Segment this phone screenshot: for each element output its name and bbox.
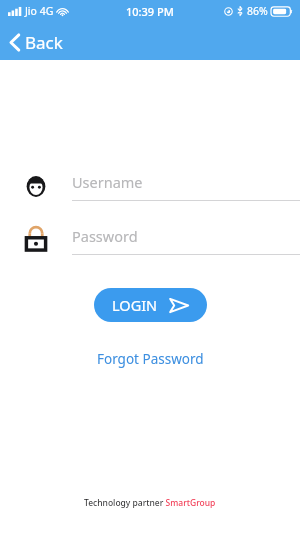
staticText: Forgot Password bbox=[97, 350, 204, 368]
staticText: Jio 4G bbox=[25, 4, 54, 18]
staticText: Username bbox=[72, 172, 143, 192]
staticText: Password bbox=[72, 226, 138, 246]
button[interactable]: LOGIN bbox=[94, 288, 207, 322]
button[interactable]: Password bbox=[0, 224, 300, 255]
staticText: LOGIN bbox=[112, 295, 158, 315]
staticText: Technology partner SmartGroup bbox=[84, 497, 216, 509]
button[interactable]: Back bbox=[5, 29, 67, 56]
button[interactable]: Forgot Password bbox=[91, 346, 210, 372]
other: Password bbox=[24, 226, 48, 254]
button[interactable]: Username bbox=[0, 170, 300, 201]
staticText: Back bbox=[25, 31, 63, 54]
staticText: 86% bbox=[247, 4, 268, 18]
other: Username bbox=[23, 173, 49, 199]
staticText: 10:39 PM bbox=[126, 4, 174, 19]
